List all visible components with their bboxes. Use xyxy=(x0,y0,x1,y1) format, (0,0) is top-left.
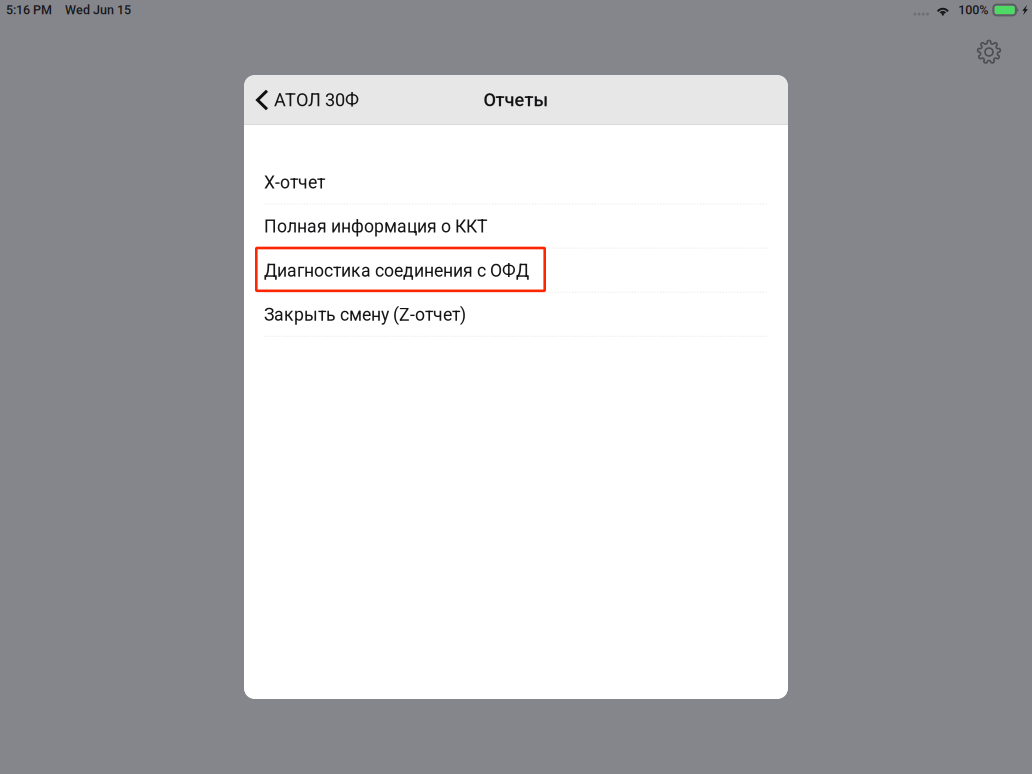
staticText: Диагностика соединения с ОФД xyxy=(264,260,529,281)
button[interactable]: Х-отчет xyxy=(244,160,788,204)
staticText: Отчеты xyxy=(483,89,548,111)
button[interactable]: Диагностика соединения с ОФД xyxy=(244,249,788,293)
staticText: 5:16 PM xyxy=(6,3,52,17)
staticText: 100% xyxy=(958,3,988,17)
staticText: Полная информация о ККТ xyxy=(264,216,488,237)
button[interactable]: Полная информация о ККТ xyxy=(244,204,788,249)
button[interactable]: Settings xyxy=(967,30,1011,74)
button[interactable]: Закрыть смену (Z-отчет) xyxy=(244,293,788,337)
staticText: Wed Jun 15 xyxy=(65,3,131,17)
staticText: Закрыть смену (Z-отчет) xyxy=(264,304,466,325)
button[interactable]: АТОЛ 30Ф xyxy=(244,75,369,125)
staticText: Х-отчет xyxy=(264,172,325,193)
staticText: АТОЛ 30Ф xyxy=(274,89,359,111)
